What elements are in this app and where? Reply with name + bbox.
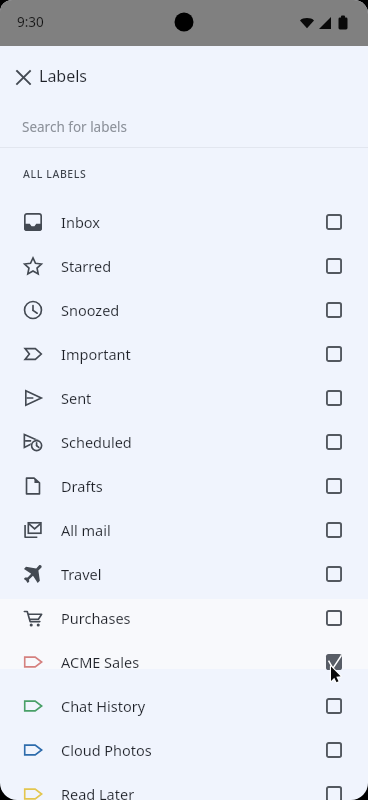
button[interactable]: Close xyxy=(3,57,43,97)
staticText: ALL LABELS xyxy=(23,167,87,181)
button[interactable]: Purchases xyxy=(0,596,368,640)
staticText: All mail xyxy=(61,520,111,540)
staticText: Labels xyxy=(39,65,88,87)
staticText: Cloud Photos xyxy=(61,740,152,760)
staticText: Read Later xyxy=(61,784,135,800)
button[interactable]: ACME Sales xyxy=(0,640,368,684)
button[interactable]: Read Later xyxy=(0,772,368,800)
button[interactable]: Drafts xyxy=(0,464,368,508)
button[interactable]: All mail xyxy=(0,508,368,552)
staticText: Search for labels xyxy=(22,118,128,136)
staticText: Chat History xyxy=(61,696,146,716)
button[interactable]: Travel xyxy=(0,552,368,596)
button[interactable]: Snoozed xyxy=(0,288,368,332)
button[interactable]: Important xyxy=(0,332,368,376)
staticText: Inbox xyxy=(61,212,100,232)
staticText: Scheduled xyxy=(61,432,132,452)
staticText: 9:30 xyxy=(17,13,44,31)
staticText: Drafts xyxy=(61,476,103,496)
button[interactable]: Inbox xyxy=(0,200,368,244)
staticText: Purchases xyxy=(61,608,131,628)
staticText: Snoozed xyxy=(61,300,120,320)
button[interactable]: Starred xyxy=(0,244,368,288)
button[interactable]: Sent xyxy=(0,376,368,420)
button[interactable]: Scheduled xyxy=(0,420,368,464)
button[interactable]: Cloud Photos xyxy=(0,728,368,772)
staticText: Sent xyxy=(61,388,92,408)
staticText: ACME Sales xyxy=(61,652,140,672)
button[interactable]: Search for labels xyxy=(0,106,368,147)
staticText: Important xyxy=(61,344,131,364)
staticText: Travel xyxy=(61,564,102,584)
staticText: Starred xyxy=(61,256,112,276)
button[interactable]: Chat History xyxy=(0,684,368,728)
